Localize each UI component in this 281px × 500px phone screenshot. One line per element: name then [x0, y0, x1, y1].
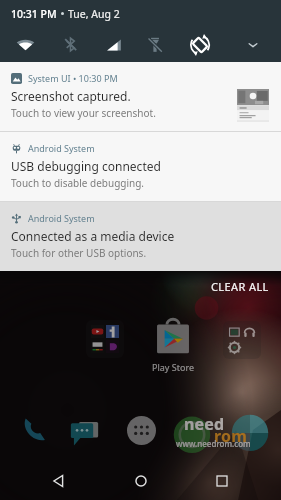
button[interactable]: Recent apps — [199, 462, 245, 500]
button[interactable]: Expand quick settings — [232, 27, 274, 62]
staticText: Touch to view your screenshot. — [11, 106, 156, 120]
staticText: Android System — [28, 142, 95, 154]
staticText: Touch to disable debugging. — [11, 176, 145, 190]
button[interactable]: Android System — [0, 202, 281, 271]
button[interactable]: Back — [36, 462, 82, 500]
staticText: need — [184, 413, 225, 435]
button[interactable]: Wi-Fi — [4, 27, 46, 62]
button[interactable]: Phone — [21, 417, 47, 443]
staticText: Tue, Aug 2 — [68, 7, 120, 21]
button[interactable]: Play Store — [154, 318, 192, 358]
button[interactable]: Mobile data — [93, 27, 135, 62]
staticText: USB debugging connected — [11, 158, 161, 174]
button[interactable]: Auto rotate — [179, 27, 221, 62]
button[interactable]: Flashlight off — [134, 27, 176, 62]
staticText: Android System — [28, 212, 95, 224]
button[interactable]: All apps — [127, 416, 156, 445]
button[interactable]: System UI • 10:30 PM — [0, 62, 281, 131]
staticText: www.needrom.com — [176, 438, 251, 449]
button[interactable]: Folder — [86, 320, 124, 358]
staticText: Play Store — [152, 361, 194, 373]
staticText: Connected as a media device — [11, 228, 175, 244]
staticText: Screenshot captured. — [11, 88, 131, 104]
button[interactable]: Home — [118, 462, 164, 500]
button[interactable]: Bluetooth off — [49, 27, 91, 62]
staticText: Touch for other USB options. — [11, 246, 147, 260]
staticText: rom — [214, 425, 248, 447]
button[interactable]: Folder — [223, 321, 261, 359]
staticText: System UI • 10:30 PM — [28, 72, 118, 84]
button[interactable]: CLEAR ALL — [199, 277, 281, 296]
button[interactable]: Android System — [0, 132, 281, 201]
staticText: 10:31 PM — [11, 7, 57, 21]
button[interactable]: Messaging — [69, 417, 100, 448]
staticText: CLEAR ALL — [211, 279, 269, 294]
